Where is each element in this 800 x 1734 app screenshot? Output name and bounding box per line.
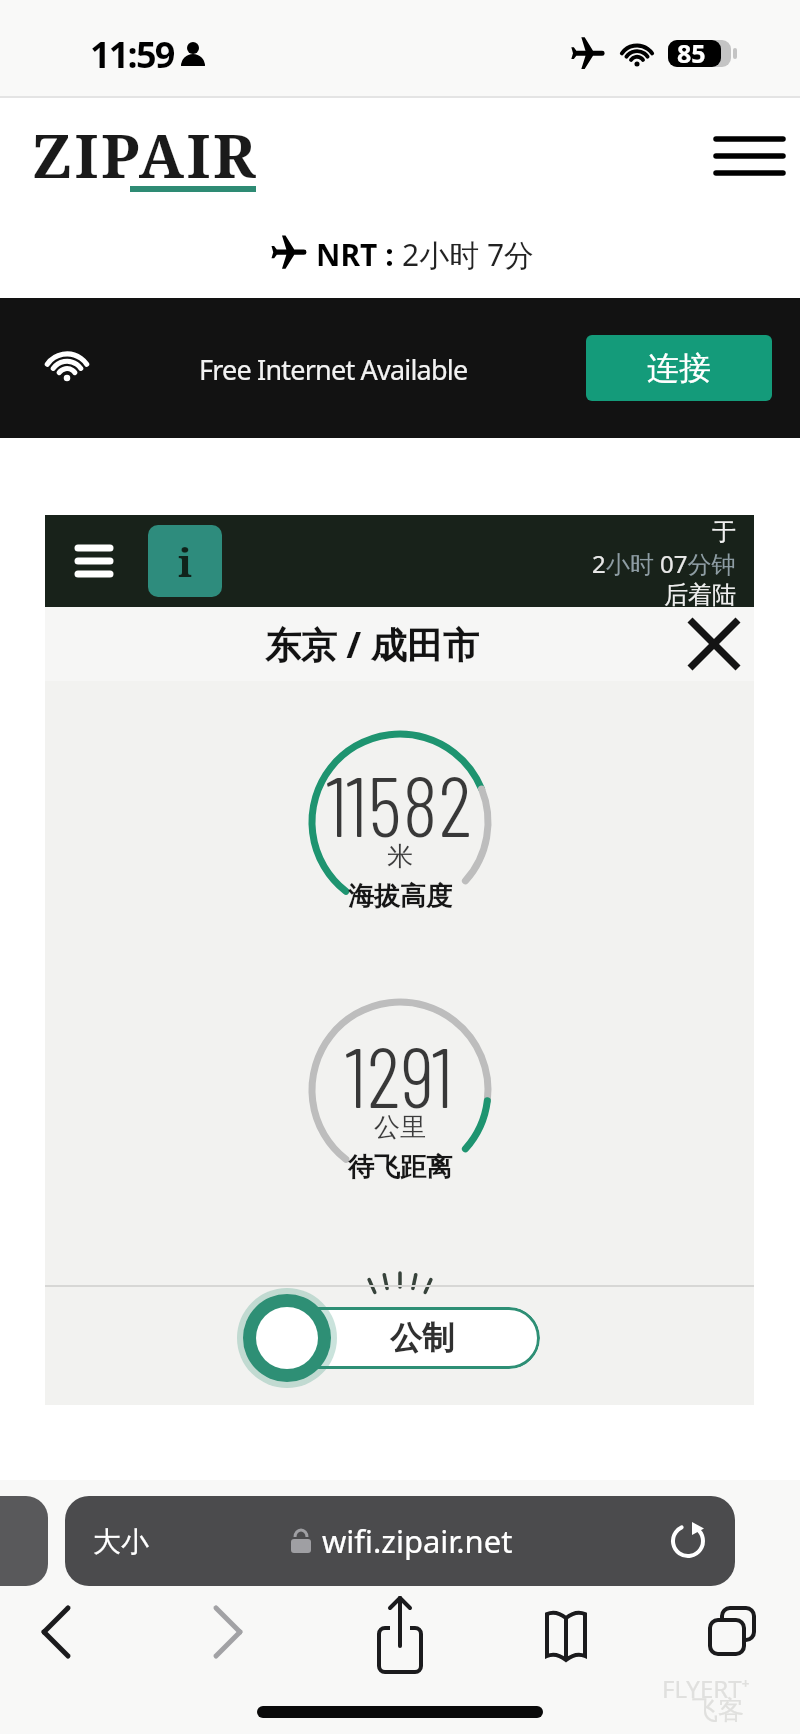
button[interactable] [320,1595,480,1675]
staticText: 11:59 [90,30,174,79]
button[interactable]: 大小 [65,1496,735,1586]
button[interactable] [0,1595,160,1675]
staticText: FLYERT⁺ [662,1672,750,1705]
button[interactable]: 连接 [586,335,772,401]
button[interactable]: i [148,525,222,597]
staticText: wifi.zipair.net [322,1520,513,1562]
staticText: 东京 / 成田市 [265,620,479,669]
staticText: i [178,534,193,588]
staticText: 85 [677,36,706,70]
button[interactable] [706,125,796,187]
staticText: 公制 [390,1318,454,1358]
button[interactable] [686,616,742,672]
staticText: Free Internet Available [199,351,468,388]
staticText: 公里 [374,1111,426,1144]
staticText: 大小 [93,1524,149,1559]
staticText: 2小时 07分钟 [592,547,736,580]
staticText: 米 [387,840,413,873]
staticText: ZIPAIR [32,114,259,196]
staticText: 飞客 [692,1694,744,1727]
button[interactable] [243,1294,331,1382]
button[interactable] [78,546,112,580]
staticText: NRT : [316,234,394,275]
staticText: 2小时 7分 [402,234,535,275]
button[interactable] [160,1595,320,1675]
button[interactable] [640,1595,800,1675]
button[interactable] [480,1595,640,1675]
staticText: 1291 [345,1024,454,1125]
staticText: 11582 [326,753,473,854]
staticText: 连接 [647,348,711,388]
button[interactable]: 公制 [250,1307,540,1369]
staticText: 待飞距离 [348,1151,452,1184]
staticText: 后着陆 [664,580,736,607]
staticText: 于 [712,517,736,547]
staticText: 海拔高度 [348,880,452,913]
